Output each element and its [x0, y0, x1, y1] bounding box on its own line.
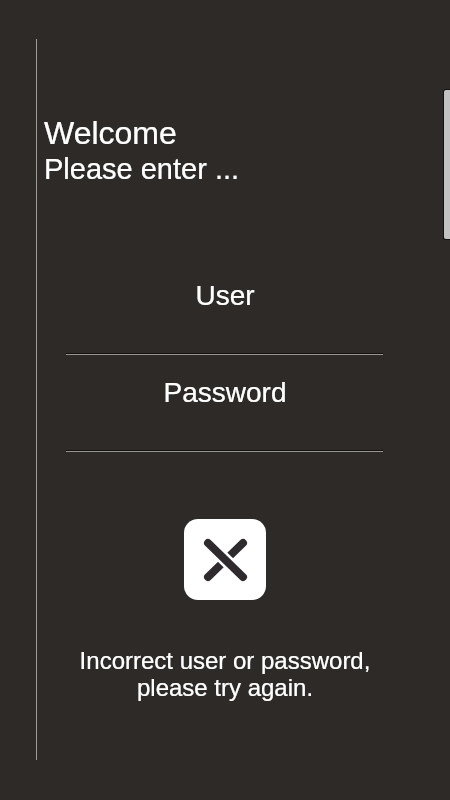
staticText: Please enter ... — [44, 153, 240, 185]
staticText: Welcome — [44, 115, 177, 151]
button[interactable] — [66, 276, 383, 354]
button[interactable] — [66, 373, 383, 451]
button[interactable]: Dismiss error — [184, 519, 266, 600]
staticText: Password — [0, 377, 450, 408]
staticText: Incorrect user or password, please try a… — [0, 647, 450, 701]
staticText: User — [0, 280, 450, 311]
